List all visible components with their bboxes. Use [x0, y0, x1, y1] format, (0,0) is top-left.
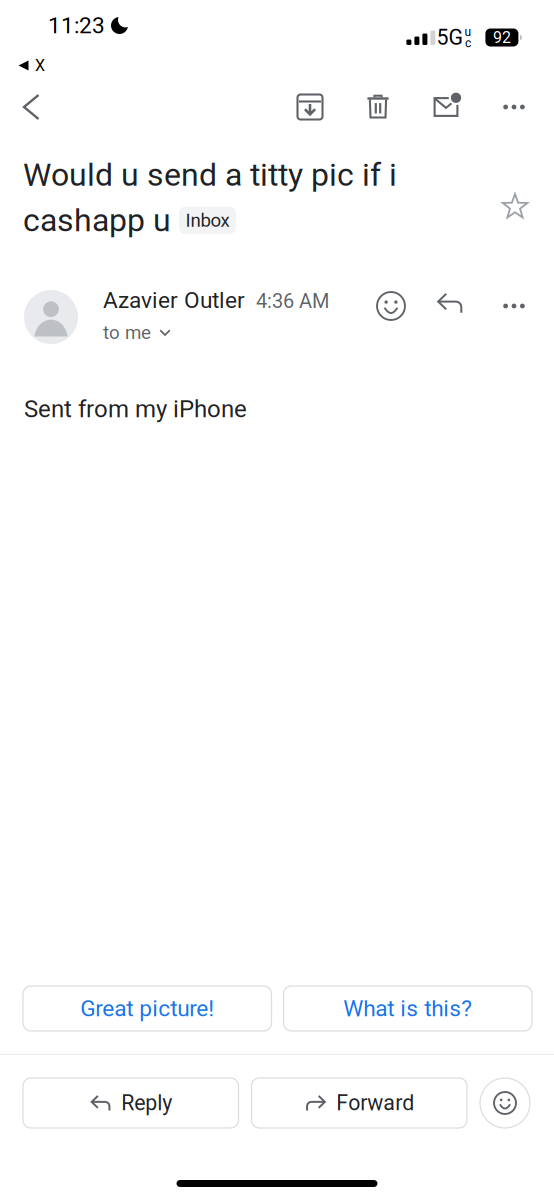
staticText: Would u send a titty pic if i	[23, 156, 397, 193]
button[interactable]: Star	[492, 184, 538, 230]
staticText: Reply	[121, 1090, 172, 1115]
staticText: 4:36 AM	[256, 289, 329, 313]
button[interactable]: Mark as unread	[419, 80, 473, 134]
button[interactable]: Reply	[433, 283, 477, 323]
staticText: Forward	[336, 1090, 414, 1115]
button[interactable]: Forward	[251, 1078, 467, 1128]
button[interactable]: Reply	[23, 1078, 238, 1128]
button[interactable]: Great picture!	[23, 986, 271, 1031]
button[interactable]: React	[480, 1078, 530, 1128]
staticText: What is this?	[343, 995, 472, 1022]
button[interactable]: React	[379, 286, 423, 326]
button[interactable]: What is this?	[283, 986, 532, 1031]
button[interactable]: to me	[103, 322, 171, 343]
staticText: Inbox	[185, 209, 229, 231]
button[interactable]: Back to X	[0, 56, 45, 75]
staticText: to me	[103, 322, 151, 343]
button[interactable]: Back	[4, 80, 58, 134]
button[interactable]: Archive	[283, 80, 337, 134]
staticText: Great picture!	[80, 995, 214, 1022]
staticText: 5G	[436, 25, 463, 50]
staticText: 11:23	[48, 12, 105, 39]
staticText: Sent from my iPhone	[24, 395, 247, 423]
staticText: u	[464, 25, 471, 39]
staticText: cashapp u	[23, 201, 171, 239]
staticText: 92	[493, 28, 511, 47]
button[interactable]: More options	[494, 286, 534, 326]
staticText: X	[35, 56, 45, 75]
button[interactable]: Delete	[351, 80, 405, 134]
staticText: Azavier Outler	[103, 287, 245, 314]
button[interactable]: More options	[487, 80, 541, 134]
staticText: c	[465, 36, 471, 50]
